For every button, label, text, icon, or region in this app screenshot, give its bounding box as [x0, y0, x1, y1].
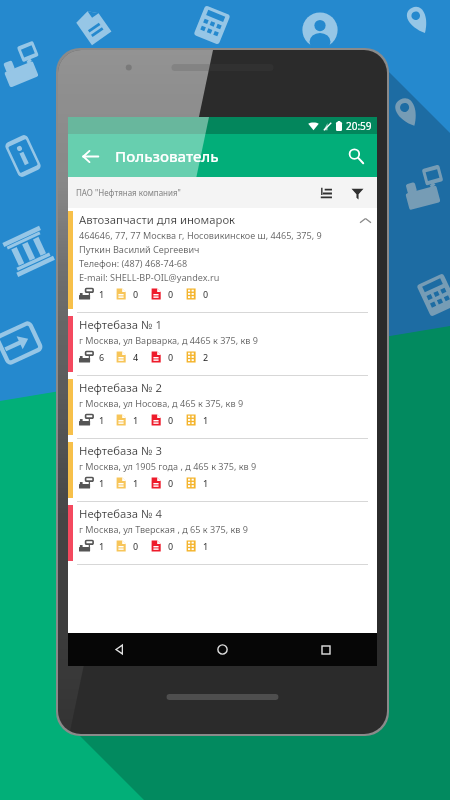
staticText: 1 [99, 540, 105, 552]
staticText: 1 [133, 477, 139, 489]
staticText: 2 [203, 351, 209, 363]
staticText: г Москва, ул Тверская , д 65 к 375, кв 9 [79, 523, 248, 535]
staticText: Нефтебаза № 3 [79, 443, 162, 458]
staticText: 1 [99, 414, 105, 426]
button[interactable]: Search [338, 138, 374, 174]
staticText: Нефтебаза № 2 [79, 380, 162, 395]
staticText: 6 [99, 351, 105, 363]
staticText: 0 [168, 477, 174, 489]
button[interactable]: Нефтебаза № 3 [68, 439, 377, 501]
staticText: Телефон: (487) 468-74-68 [79, 257, 188, 269]
staticText: 0 [203, 288, 209, 300]
button[interactable]: Нефтебаза № 2 [68, 376, 377, 438]
staticText: 0 [168, 414, 174, 426]
staticText: E-mail: SHELL-BP-OIL@yandex.ru [79, 271, 220, 283]
staticText: 0 [168, 540, 174, 552]
staticText: г Москва, ул Варварка, д 4465 к 375, кв … [79, 334, 259, 346]
staticText: 1 [133, 414, 139, 426]
staticText: 0 [133, 288, 139, 300]
button[interactable]: Нефтебаза № 4 [68, 502, 377, 564]
staticText: 0 [168, 288, 174, 300]
staticText: г Москва, ул Носова, д 465 к 375, кв 9 [79, 397, 244, 409]
staticText: Автозапчасти для иномарок [79, 212, 236, 227]
button[interactable]: Back [72, 138, 108, 174]
button[interactable]: Back [68, 633, 171, 666]
staticText: 1 [203, 540, 209, 552]
staticText: ПАО "Нефтяная компания" [76, 187, 181, 198]
staticText: Путкин Василий Сергеевич [79, 243, 200, 255]
staticText: 20:59 [346, 119, 372, 133]
button[interactable]: Recents [274, 633, 377, 666]
staticText: 1 [203, 477, 209, 489]
staticText: Нефтебаза № 4 [79, 506, 162, 521]
button[interactable]: Home [171, 633, 274, 666]
staticText: 1 [99, 477, 105, 489]
staticText: 0 [168, 351, 174, 363]
staticText: Пользователь [115, 146, 219, 166]
staticText: 0 [133, 540, 139, 552]
button[interactable]: Sort [311, 178, 341, 208]
button[interactable]: Автозапчасти для иномарок [68, 208, 377, 312]
staticText: 4 [133, 351, 139, 363]
staticText: 464646, 77, 77 Москва г, Носовикинское ш… [79, 229, 322, 241]
staticText: 1 [99, 288, 105, 300]
staticText: г Москва, ул 1905 года , д 465 к 375, кв… [79, 460, 257, 472]
staticText: 1 [203, 414, 209, 426]
staticText: Нефтебаза № 1 [79, 317, 162, 332]
button[interactable]: Filter [342, 178, 372, 208]
button[interactable]: Нефтебаза № 1 [68, 313, 377, 375]
